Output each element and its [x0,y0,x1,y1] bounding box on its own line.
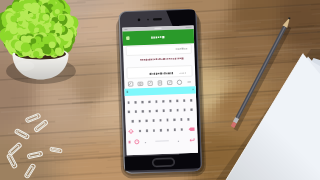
button[interactable]: Messaging app on phone [0,0,320,180]
